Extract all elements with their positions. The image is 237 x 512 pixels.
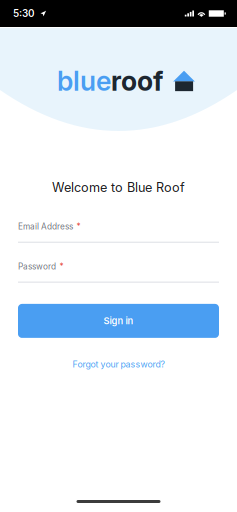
staticText: 5:30 bbox=[13, 7, 35, 19]
staticText: * bbox=[59, 261, 63, 271]
button[interactable]: Sign in bbox=[18, 304, 219, 338]
staticText: Welcome to Blue Roof bbox=[52, 180, 185, 195]
staticText: Password bbox=[18, 261, 56, 271]
staticText: Email Address bbox=[18, 222, 73, 232]
staticText: Sign in bbox=[103, 315, 133, 327]
staticText: blue bbox=[57, 65, 111, 97]
staticText: * bbox=[76, 222, 80, 232]
staticText: roof bbox=[111, 65, 163, 97]
button[interactable]: Forgot your password? bbox=[18, 359, 219, 369]
staticText: Forgot your password? bbox=[72, 359, 164, 369]
